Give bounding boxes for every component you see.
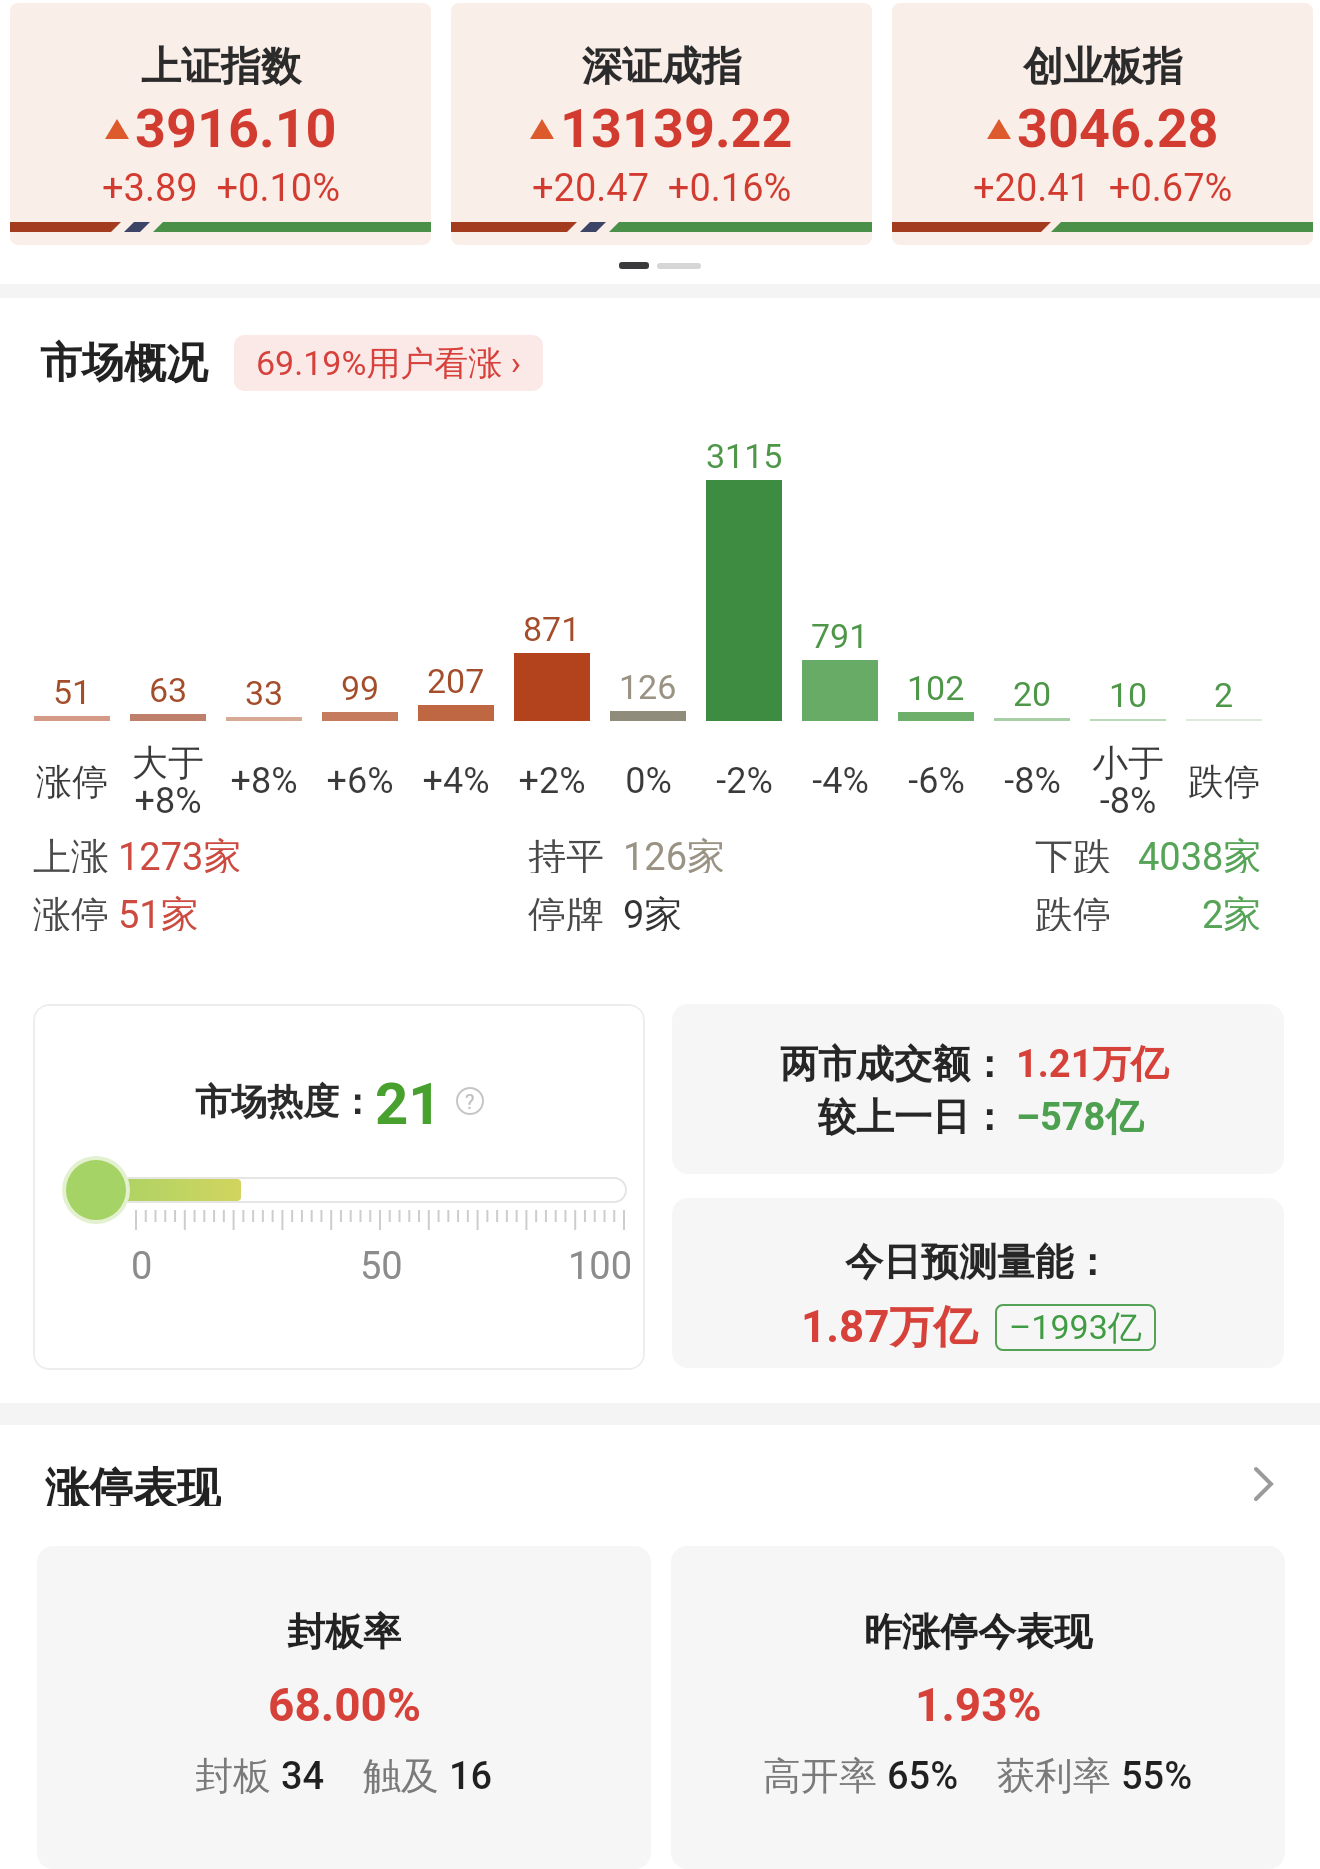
staticText: 上涨 — [33, 833, 109, 873]
staticText: 3046.28 — [1017, 97, 1219, 160]
staticText: 3916.10 — [135, 97, 337, 160]
staticText: +2% — [518, 760, 586, 802]
staticText: 69.19%用户看涨 › — [256, 342, 521, 385]
staticText: 4038家 — [1138, 833, 1262, 873]
staticText: 65% — [887, 1754, 959, 1799]
staticText: 2 — [1214, 675, 1234, 715]
staticText: 大于 +8% — [132, 740, 204, 822]
button[interactable]: 上证指数 — [10, 3, 431, 245]
button[interactable] — [1252, 1466, 1276, 1502]
staticText: 封板率 — [287, 1608, 401, 1656]
staticText: 触及 — [325, 1752, 449, 1800]
staticText: ? — [465, 1090, 475, 1113]
staticText: 1.87万亿 — [801, 1300, 978, 1355]
button[interactable]: 今日预测量能： — [672, 1198, 1284, 1368]
staticText: 创业板指 — [1023, 41, 1183, 91]
staticText: 34 — [281, 1754, 325, 1799]
button[interactable]: 昨涨停今表现 — [671, 1546, 1285, 1869]
staticText: 两市成交额： — [780, 1040, 1008, 1084]
staticText: 1.21万亿 — [1016, 1040, 1169, 1084]
staticText: +8% — [230, 760, 298, 802]
staticText: 99 — [341, 668, 380, 708]
staticText: 涨停 — [33, 891, 109, 931]
staticText: 上证指数 — [141, 41, 301, 91]
staticText: 3115 — [706, 436, 783, 476]
staticText: -4% — [812, 760, 869, 802]
staticText: 涨停表现 — [45, 1462, 221, 1506]
staticText: 跌停 — [1188, 759, 1260, 804]
staticText: +20.41 +0.67% — [973, 166, 1233, 211]
button[interactable]: 69.19%用户看涨 › — [234, 335, 543, 391]
staticText: 1.93% — [915, 1678, 1042, 1732]
staticText: 较上一日： — [818, 1093, 1008, 1137]
staticText: 涨停 — [36, 759, 108, 804]
staticText: 市场概况 — [40, 337, 208, 390]
staticText: +4% — [422, 760, 490, 802]
button[interactable]: 深证成指 — [451, 3, 872, 245]
button[interactable]: 创业板指 — [892, 3, 1313, 245]
staticText: 55% — [1121, 1754, 1193, 1799]
staticText: -2% — [716, 760, 773, 802]
staticText: 68.00% — [268, 1678, 421, 1732]
staticText: 获利率 — [959, 1752, 1121, 1800]
staticText: 871 — [523, 609, 581, 649]
staticText: 封板 — [195, 1752, 281, 1800]
staticText: 100 — [568, 1244, 633, 1289]
staticText: 跌停 — [1035, 891, 1111, 931]
staticText: 昨涨停今表现 — [864, 1608, 1092, 1656]
staticText: +20.47 +0.16% — [532, 166, 792, 211]
staticText: 33 — [245, 673, 284, 713]
staticText: 下跌 — [1035, 833, 1111, 873]
staticText: 10 — [1109, 675, 1148, 715]
staticText: 13139.22 — [560, 97, 793, 160]
staticText: 51家 — [118, 891, 199, 931]
staticText: 小于 -8% — [1092, 740, 1164, 822]
staticText: 21 — [375, 1070, 442, 1132]
staticText: 126 — [619, 667, 677, 707]
staticText: 51 — [53, 672, 92, 712]
staticText: 102 — [907, 668, 965, 708]
staticText: 停牌 — [528, 891, 604, 931]
staticText: 深证成指 — [582, 41, 742, 91]
button[interactable]: 市场热度： — [33, 1004, 645, 1370]
staticText: 1273家 — [118, 833, 242, 873]
staticText: 今日预测量能： — [845, 1238, 1111, 1286]
staticText: 9家 — [623, 891, 683, 931]
staticText: 持平 — [528, 833, 604, 873]
staticText: –1993亿 — [1009, 1306, 1142, 1349]
staticText: 50 — [360, 1244, 403, 1289]
button[interactable]: 封板率 — [37, 1546, 651, 1869]
staticText: 791 — [811, 616, 869, 656]
staticText: 126家 — [623, 833, 726, 873]
staticText: +3.89 +0.10% — [102, 166, 340, 211]
staticText: –578亿 — [1016, 1093, 1144, 1137]
staticText: 2家 — [1202, 891, 1262, 931]
staticText: 16 — [449, 1754, 493, 1799]
staticText: 63 — [149, 670, 188, 710]
staticText: 207 — [427, 661, 485, 701]
staticText: 0 — [131, 1244, 153, 1289]
staticText: -6% — [908, 760, 965, 802]
staticText: +6% — [326, 760, 394, 802]
staticText: 0% — [625, 760, 672, 802]
staticText: -8% — [1004, 760, 1061, 802]
staticText: 20 — [1013, 674, 1052, 714]
staticText: 市场热度： — [195, 1079, 375, 1124]
staticText: 高开率 — [763, 1752, 887, 1800]
button[interactable]: 两市成交额： — [672, 1004, 1284, 1174]
